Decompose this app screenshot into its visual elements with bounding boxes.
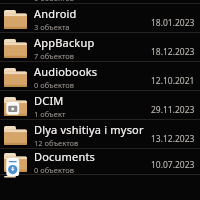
staticText: 0 объектов [34,80,74,90]
staticText: Audiobooks [34,64,98,79]
button[interactable]: Audiobooks [0,62,200,91]
staticText: 13.12.2023 [151,133,195,145]
staticText: 7 объектов [34,51,74,61]
button[interactable]: Android [0,4,200,33]
staticText: Dlya vshitiya i mysor [34,122,144,137]
staticText: 18.01.2023 [151,17,195,29]
staticText: Documents [34,149,96,164]
button[interactable]: Alarms [0,0,200,4]
staticText: 1 объект [34,109,66,119]
staticText: 0 объектов [34,0,74,3]
button[interactable]: Dlya vshitiya i mysor [0,120,200,149]
button[interactable]: Documents [0,149,200,175]
button[interactable]: DCIM [0,91,200,120]
staticText: 0 объектов [34,165,74,175]
staticText: 10.07.2023 [151,159,195,171]
staticText: AppBackup [34,35,95,50]
staticText: 12 объектов [34,138,79,148]
staticText: DCIM [34,93,64,108]
staticText: 18.12.2023 [151,46,195,58]
button[interactable]: AppBackup [0,33,200,62]
staticText: Android [34,6,77,21]
staticText: 3 объекта [34,22,70,32]
staticText: 29.11.2023 [151,104,195,116]
staticText: 12.10.2021 [151,75,195,87]
